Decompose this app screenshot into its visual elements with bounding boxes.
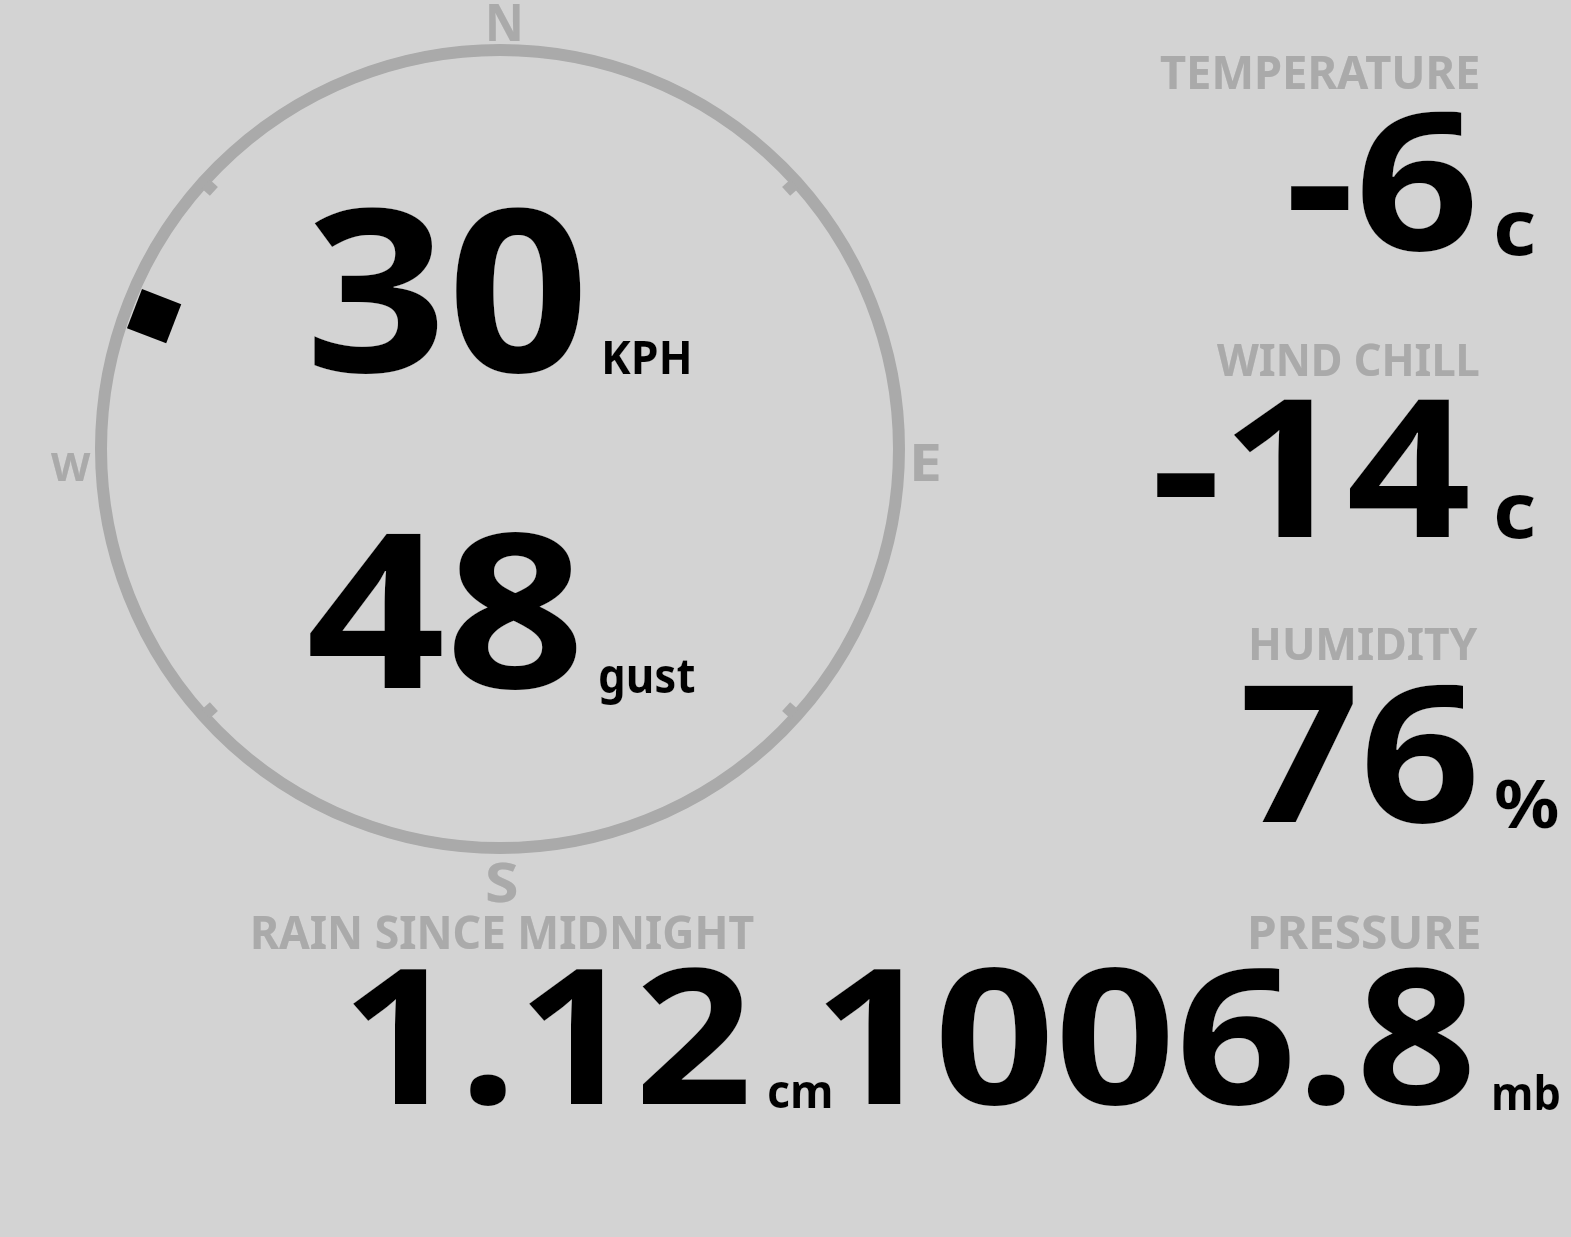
staticText: c: [1493, 173, 1536, 278]
staticText: WIND CHILL: [1217, 328, 1480, 389]
staticText: RAIN SINCE MIDNIGHT: [250, 900, 755, 963]
staticText: c: [1493, 456, 1536, 561]
button[interactable]: Wind compass, 30 KPH gusting 48, west no…: [95, 44, 905, 854]
staticText: N: [485, 0, 524, 56]
button[interactable]: Humidity, 76 percent: [1000, 590, 1571, 860]
staticText: KPH: [601, 324, 693, 388]
staticText: cm: [767, 1057, 834, 1122]
staticText: TEMPERATURE: [1160, 39, 1481, 102]
staticText: -14: [1151, 331, 1472, 594]
button[interactable]: Pressure, 1006.8 millibars: [840, 890, 1571, 1130]
staticText: E: [909, 425, 942, 497]
staticText: W: [51, 439, 91, 492]
button[interactable]: Temperature, minus 6 degrees Celsius: [1000, 20, 1571, 290]
staticText: PRESSURE: [1247, 900, 1482, 963]
staticText: mb: [1491, 1060, 1562, 1124]
staticText: 48: [306, 457, 586, 751]
staticText: -6: [1285, 44, 1480, 307]
staticText: HUMIDITY: [1248, 612, 1477, 674]
staticText: 76: [1239, 618, 1480, 877]
staticText: 1006.8: [813, 903, 1477, 1143]
staticText: S: [485, 844, 519, 918]
staticText: 1.12: [341, 903, 754, 1143]
staticText: %: [1494, 757, 1560, 847]
button[interactable]: Rain since midnight, 1.12 centimetres: [230, 890, 840, 1130]
button[interactable]: Wind chill, minus 14 degrees Celsius: [1000, 305, 1571, 575]
staticText: 30: [305, 129, 590, 438]
staticText: gust: [598, 642, 696, 707]
